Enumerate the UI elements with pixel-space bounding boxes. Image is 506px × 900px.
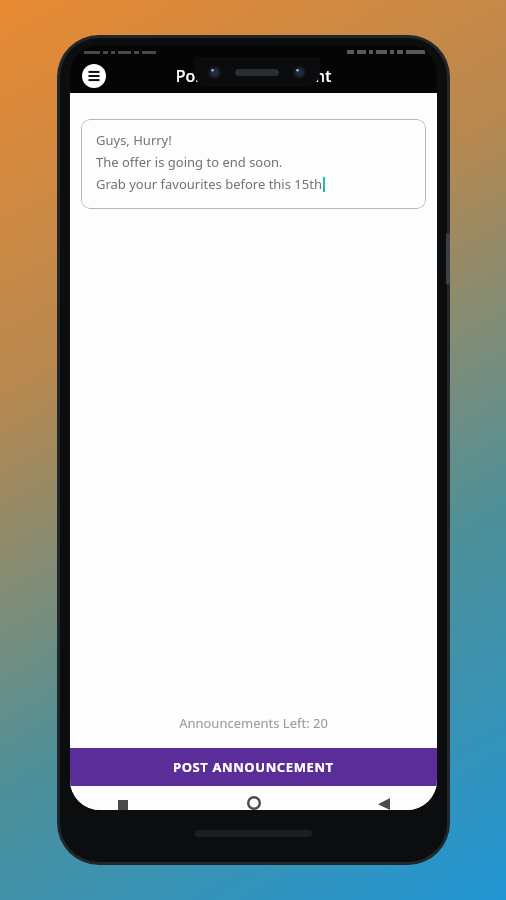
button[interactable]: POST ANNOUNCEMENT [70, 748, 437, 786]
button[interactable]: Home [243, 788, 265, 810]
button[interactable]: Recent apps [112, 788, 134, 810]
staticText: The offer is going to end soon. [96, 153, 283, 171]
staticText: POST ANNOUNCEMENT [173, 758, 334, 776]
staticText: Guys, Hurry! [96, 131, 172, 149]
button[interactable]: Open navigation menu [82, 64, 106, 88]
button[interactable]: Guys, Hurry! [81, 119, 426, 209]
button[interactable]: Back [373, 788, 395, 810]
staticText: Announcements Left: 20 [70, 714, 437, 732]
staticText: Post Announcement [70, 65, 437, 87]
staticText: Grab your favourites before this 15th [96, 175, 322, 193]
